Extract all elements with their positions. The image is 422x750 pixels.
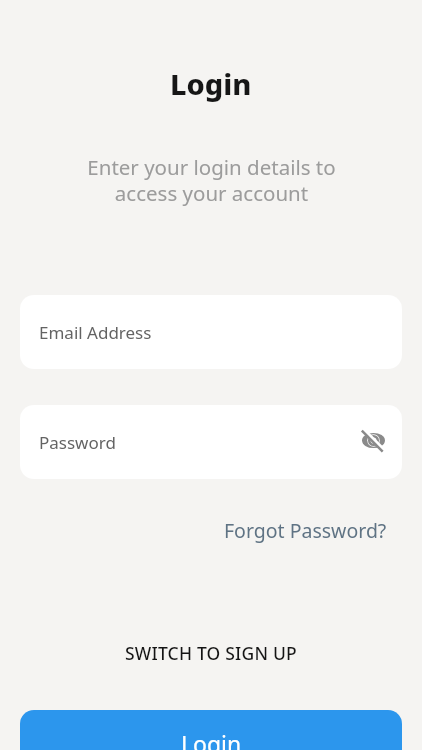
button[interactable]: Forgot Password? — [224, 517, 387, 544]
staticText: Enter your login details to access your … — [87, 153, 336, 207]
staticText: Email Address — [39, 321, 152, 344]
button[interactable]: Password — [20, 405, 402, 479]
staticText: SWITCH TO SIGN UP — [125, 641, 297, 665]
staticText: Login — [181, 728, 242, 750]
button[interactable]: SWITCH TO SIGN UP — [125, 641, 297, 665]
button[interactable]: Email Address — [20, 295, 402, 369]
staticText: Password — [39, 431, 116, 454]
button[interactable]: Login — [20, 710, 402, 750]
staticText: Forgot Password? — [224, 517, 387, 544]
staticText: Login — [170, 64, 252, 103]
